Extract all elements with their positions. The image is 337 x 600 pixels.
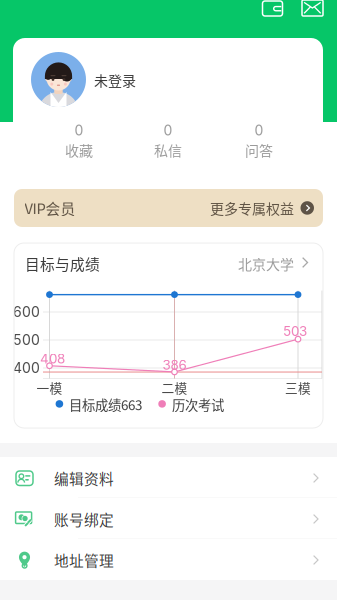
staticText: 目标成绩663: [69, 395, 142, 414]
staticText: 0: [254, 122, 263, 139]
staticText: VIP会员: [24, 197, 75, 219]
staticText: 408: [40, 351, 65, 367]
staticText: 更多专属权益: [210, 198, 294, 218]
button[interactable]: Wallet: [260, 0, 284, 19]
staticText: 收藏: [65, 140, 93, 160]
staticText: 一模: [36, 378, 62, 397]
staticText: 北京大学: [238, 253, 294, 274]
button[interactable]: 目标与成绩: [14, 243, 323, 283]
staticText: 500: [13, 331, 40, 348]
button[interactable]: 0: [123, 126, 213, 156]
button[interactable]: 账号绑定: [0, 498, 337, 539]
staticText: 目标与成绩: [25, 253, 100, 274]
button[interactable]: Messages: [300, 0, 324, 19]
staticText: 400: [13, 359, 40, 376]
staticText: 二模: [161, 378, 187, 397]
staticText: 503: [283, 323, 307, 339]
staticText: 未登录: [94, 70, 136, 90]
staticText: 私信: [154, 140, 182, 160]
staticText: 地址管理: [54, 549, 114, 571]
staticText: 0: [163, 122, 172, 139]
button[interactable]: 0: [214, 126, 304, 156]
button[interactable]: 地址管理: [0, 539, 337, 580]
button[interactable]: 编辑资料: [0, 457, 337, 498]
staticText: 三模: [285, 378, 311, 397]
button[interactable]: 0: [34, 126, 124, 156]
staticText: 0: [74, 122, 83, 139]
staticText: 600: [13, 303, 40, 320]
staticText: 账号绑定: [54, 508, 114, 530]
staticText: 问答: [245, 140, 273, 160]
staticText: 编辑资料: [54, 467, 114, 489]
button[interactable]: VIP会员: [14, 189, 323, 227]
staticText: 386: [162, 357, 186, 373]
staticText: 历次考试: [172, 395, 224, 414]
